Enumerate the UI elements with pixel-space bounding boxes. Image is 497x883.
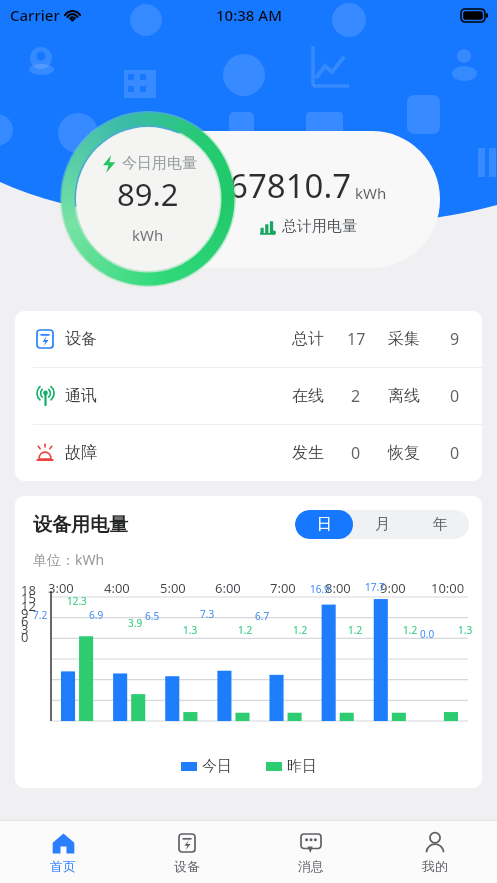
staticText: 17.7: [365, 580, 385, 594]
staticText: 4:00: [104, 579, 130, 597]
staticText: 3: [21, 620, 47, 638]
button[interactable]: 月: [353, 510, 411, 539]
staticText: 采集: [388, 329, 420, 349]
button[interactable]: 年: [411, 510, 469, 539]
button[interactable]: 设备: [15, 311, 482, 367]
staticText: 2: [351, 385, 361, 407]
staticText: 0: [21, 628, 47, 646]
staticText: 发生: [292, 443, 324, 463]
staticText: 今日: [202, 757, 232, 776]
button[interactable]: 日: [295, 510, 353, 539]
staticText: 消息: [298, 858, 324, 874]
staticText: 我的: [422, 858, 448, 874]
staticText: 1.2: [403, 623, 418, 637]
staticText: 89.2: [117, 173, 179, 215]
staticText: 12: [21, 597, 47, 615]
staticText: 15: [21, 589, 47, 607]
button[interactable]: 通讯: [15, 368, 482, 424]
staticText: 7.3: [200, 607, 215, 621]
staticText: 单位：kWh: [33, 550, 105, 569]
staticText: 8:00: [325, 579, 351, 597]
staticText: 10:00: [431, 579, 465, 597]
staticText: 6.9: [89, 608, 104, 622]
staticText: 16.9: [310, 582, 330, 596]
staticText: 故障: [65, 443, 97, 463]
staticText: Carrier: [10, 5, 60, 25]
staticText: 1.2: [238, 623, 253, 637]
staticText: 设备: [174, 858, 200, 874]
staticText: kWh: [355, 183, 387, 203]
staticText: 昨日: [287, 757, 317, 776]
staticText: 9: [21, 604, 47, 622]
button[interactable]: 首页: [0, 821, 125, 883]
staticText: 总计: [292, 329, 324, 349]
staticText: 3:00: [48, 579, 74, 597]
staticText: 10:38 AM: [216, 5, 282, 25]
staticText: 设备用电量: [33, 513, 128, 537]
staticText: 17: [347, 328, 366, 350]
staticText: 1.3: [458, 623, 473, 637]
staticText: 总计用电量: [282, 217, 357, 236]
staticText: 今日用电量: [122, 154, 197, 173]
staticText: 9: [450, 328, 460, 350]
staticText: 9:00: [380, 579, 406, 597]
staticText: 1.2: [348, 623, 363, 637]
button[interactable]: 67810.7: [128, 131, 440, 268]
staticText: 通讯: [65, 386, 97, 406]
staticText: 0.0: [420, 627, 435, 641]
button[interactable]: 消息: [249, 821, 373, 883]
staticText: 6.5: [145, 609, 160, 623]
button[interactable]: 设备: [125, 821, 249, 883]
staticText: 0: [450, 385, 460, 407]
staticText: 恢复: [388, 443, 420, 463]
staticText: 在线: [292, 386, 324, 406]
staticText: 首页: [50, 858, 76, 874]
staticText: 6: [21, 612, 47, 630]
staticText: 月: [375, 515, 390, 534]
staticText: 67810.7: [229, 163, 352, 208]
staticText: 5:00: [160, 579, 186, 597]
staticText: 6.7: [255, 609, 270, 623]
staticText: 设备: [65, 329, 97, 349]
button[interactable]: 故障: [15, 425, 482, 481]
staticText: 离线: [388, 386, 420, 406]
staticText: 12.3: [67, 594, 87, 608]
staticText: 6:00: [215, 579, 241, 597]
staticText: 7:00: [270, 579, 296, 597]
staticText: kWh: [132, 225, 164, 245]
staticText: 日: [317, 515, 332, 534]
button[interactable]: 我的: [373, 821, 497, 883]
button[interactable]: 今日用电量: [60, 111, 236, 287]
staticText: 1.3: [183, 623, 198, 637]
staticText: 0: [351, 442, 361, 464]
staticText: 3.9: [128, 616, 143, 630]
staticText: 年: [433, 515, 448, 534]
staticText: 1.2: [293, 623, 308, 637]
staticText: 0: [450, 442, 460, 464]
staticText: 7.2: [33, 608, 48, 622]
staticText: 18: [21, 581, 47, 599]
